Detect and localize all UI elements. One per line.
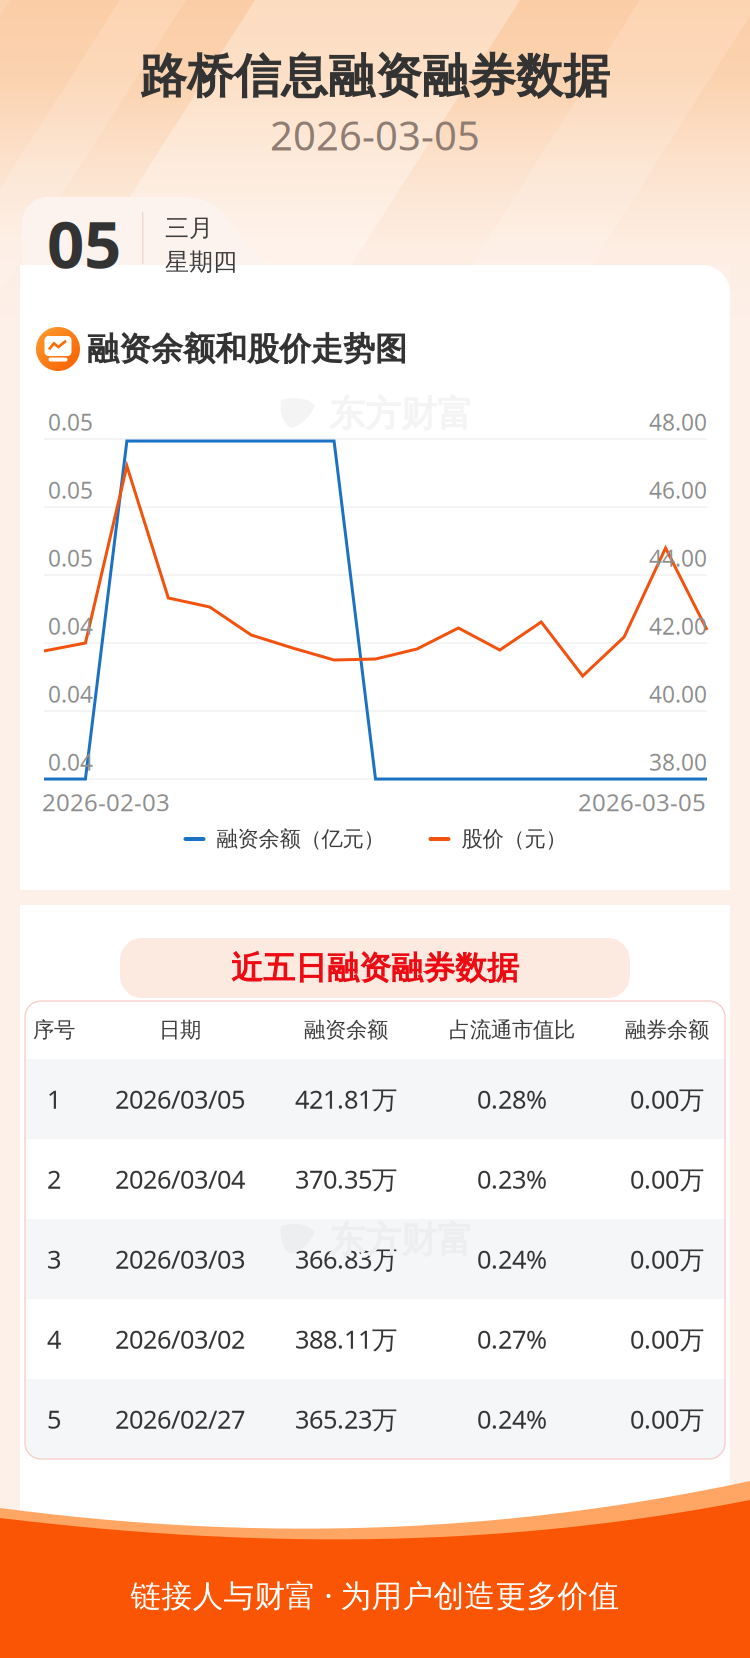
staticText: 0.04 <box>48 747 93 777</box>
staticText: 0.00万 <box>630 1322 704 1356</box>
staticText: 东方财富 <box>329 1218 473 1262</box>
staticText: 0.00万 <box>630 1082 704 1116</box>
staticText: 0.04 <box>48 611 93 641</box>
staticText: 0.05 <box>48 407 93 437</box>
staticText: 2026/03/03 <box>115 1242 245 1276</box>
staticText: 46.00 <box>649 475 707 505</box>
staticText: 0.27% <box>477 1322 547 1356</box>
staticText: 0.23% <box>477 1162 547 1196</box>
staticText: 三月 <box>165 213 213 243</box>
staticText: 0.04 <box>48 679 93 709</box>
staticText: 38.00 <box>649 747 707 777</box>
staticText: 链接人与财富 · 为用户创造更多价值 <box>130 1575 619 1615</box>
staticText: 2 <box>47 1162 61 1196</box>
staticText: 42.00 <box>649 611 707 641</box>
staticText: 融资余额和股价走势图 <box>87 329 407 369</box>
staticText: 3 <box>47 1242 61 1276</box>
staticText: 05 <box>47 200 121 286</box>
staticText: 1 <box>47 1082 61 1116</box>
staticText: 占流通市值比 <box>449 1017 575 1043</box>
staticText: 5 <box>47 1402 61 1436</box>
staticText: 序号 <box>33 1017 75 1043</box>
staticText: 0.24% <box>477 1402 547 1436</box>
staticText: 388.11万 <box>295 1322 397 1356</box>
staticText: 融券余额 <box>625 1017 709 1043</box>
staticText: 2026-02-03 <box>42 786 170 818</box>
staticText: 星期四 <box>165 247 237 277</box>
staticText: 0.05 <box>48 475 93 505</box>
staticText: 40.00 <box>649 679 707 709</box>
staticText: 0.00万 <box>630 1242 704 1276</box>
staticText: 近五日融资融券数据 <box>231 948 519 988</box>
staticText: 44.00 <box>649 543 707 573</box>
staticText: 0.28% <box>477 1082 547 1116</box>
staticText: 2026/03/04 <box>115 1162 245 1196</box>
staticText: 365.23万 <box>295 1402 397 1436</box>
staticText: 东方财富 <box>329 392 473 436</box>
staticText: 0.00万 <box>630 1162 704 1196</box>
staticText: 4 <box>47 1322 61 1356</box>
staticText: 2026-03-05 <box>578 786 706 818</box>
staticText: 421.81万 <box>295 1082 397 1116</box>
staticText: 0.00万 <box>630 1402 704 1436</box>
staticText: 股价（元） <box>461 826 566 852</box>
staticText: 日期 <box>159 1017 201 1043</box>
staticText: 370.35万 <box>295 1162 397 1196</box>
staticText: 2026/03/02 <box>115 1322 245 1356</box>
staticText: 2026/02/27 <box>115 1402 245 1436</box>
staticText: 366.83万 <box>295 1242 397 1276</box>
staticText: 2026/03/05 <box>115 1082 245 1116</box>
staticText: 路桥信息融资融券数据 <box>140 48 610 105</box>
staticText: 0.05 <box>48 543 93 573</box>
staticText: 2026-03-05 <box>270 108 480 161</box>
staticText: 48.00 <box>649 407 707 437</box>
staticText: 融资余额（亿元） <box>216 826 384 852</box>
staticText: 0.24% <box>477 1242 547 1276</box>
staticText: 融资余额 <box>304 1017 388 1043</box>
